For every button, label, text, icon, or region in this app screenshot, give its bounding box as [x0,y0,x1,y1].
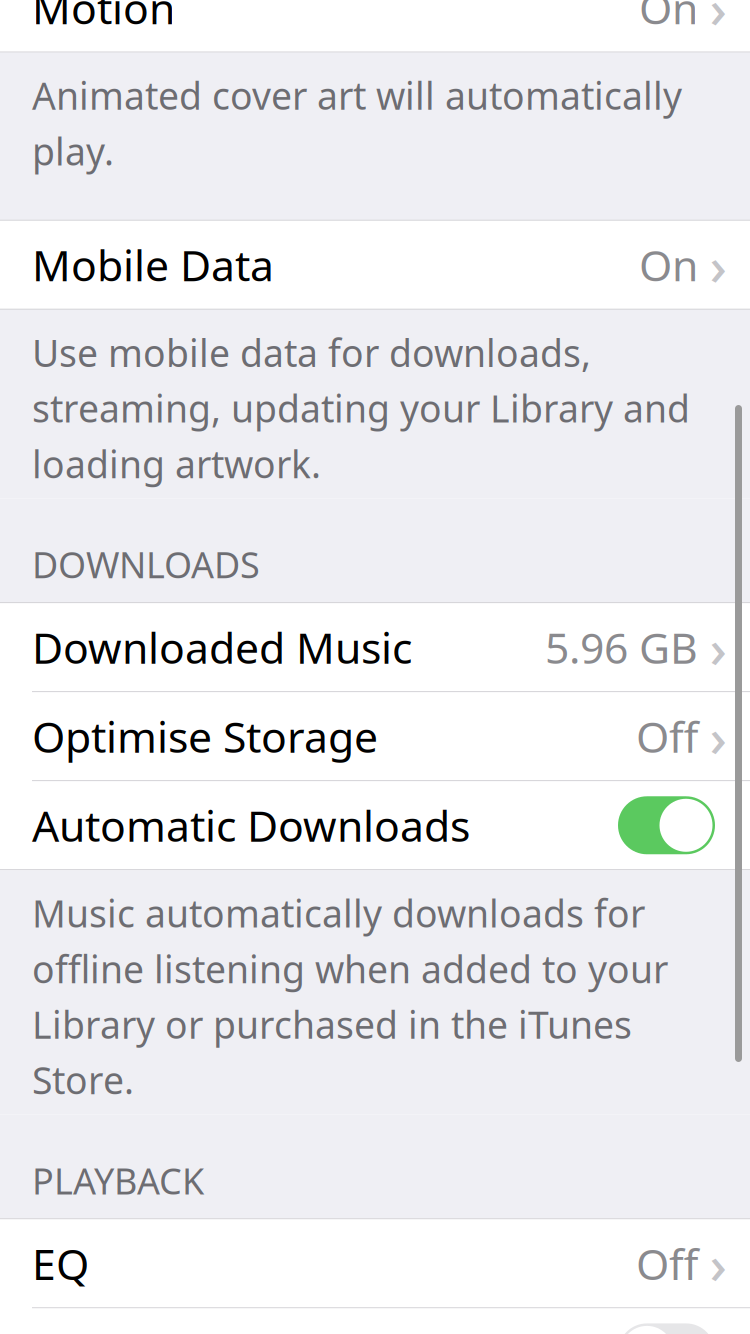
staticText: › [709,612,726,683]
staticText: Use mobile data for downloads, streaming… [32,328,690,488]
staticText: › [709,229,726,300]
staticText: EQ [32,1235,89,1292]
staticText: PLAYBACK [32,1157,204,1204]
staticText: › [709,1228,726,1299]
button[interactable]: Optimise Storage [0,692,750,780]
button[interactable]: Sound Check [0,1308,750,1334]
button[interactable]: Mobile Data [0,221,750,309]
staticText: Off [636,708,698,765]
staticText: Music automatically downloads for offlin… [32,888,668,1105]
button[interactable]: Automatic Downloads [0,781,750,869]
button[interactable]: EQ [0,1219,750,1307]
staticText: Mobile Data [32,236,274,293]
staticText: Motion [32,0,175,36]
staticText: Off [636,1235,698,1292]
staticText: On [639,236,698,293]
button[interactable]: Motion [0,0,750,52]
staticText: Animated cover art will automatically pl… [32,71,682,176]
staticText: › [709,0,726,43]
button[interactable]: Downloaded Music [0,603,750,691]
staticText: › [709,701,726,772]
staticText: 5.96 GB [545,619,698,676]
staticText: On [639,0,698,36]
staticText: Automatic Downloads [32,797,470,854]
staticText: Optimise Storage [32,708,378,765]
staticText: Downloaded Music [32,619,412,676]
staticText: DOWNLOADS [32,540,260,588]
